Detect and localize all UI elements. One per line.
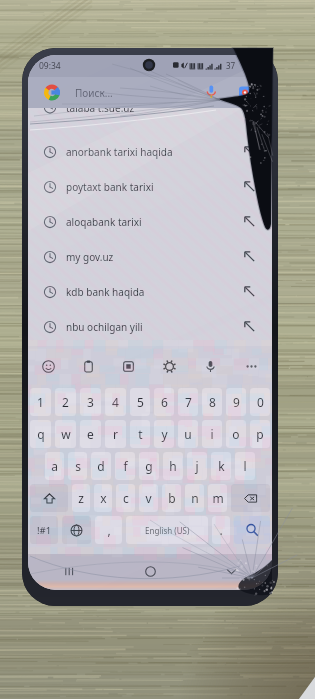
- staticText: 2: [62, 394, 69, 410]
- staticText: f: [123, 458, 128, 474]
- button[interactable]: 5: [130, 388, 150, 416]
- staticText: talaba t.sue.uz: [66, 108, 135, 115]
- button[interactable]: c: [116, 484, 135, 512]
- staticText: aloqabank tarixi: [66, 215, 142, 229]
- button[interactable]: t: [130, 420, 150, 448]
- button[interactable]: my gov.uz: [28, 239, 272, 274]
- button[interactable]: .: [212, 516, 230, 544]
- button[interactable]: v: [139, 484, 158, 512]
- button[interactable]: o: [226, 420, 246, 448]
- staticText: i: [210, 426, 214, 442]
- button[interactable]: Recents: [28, 554, 110, 588]
- staticText: 4: [112, 394, 119, 410]
- button[interactable]: u: [178, 420, 198, 448]
- button[interactable]: More options: [231, 346, 272, 386]
- staticText: w: [61, 426, 71, 442]
- button[interactable]: r: [105, 420, 126, 448]
- staticText: p: [256, 426, 264, 442]
- button[interactable]: n: [185, 484, 204, 512]
- staticText: c: [123, 490, 129, 506]
- staticText: m: [212, 490, 224, 506]
- button[interactable]: poytaxt bank tarixi: [28, 169, 272, 204]
- button[interactable]: Keyboard settings: [149, 346, 190, 386]
- button[interactable]: y: [154, 420, 174, 448]
- button[interactable]: anorbank tarixi haqida: [28, 134, 272, 169]
- staticText: s: [75, 458, 81, 474]
- button[interactable]: 7: [178, 388, 198, 416]
- staticText: j: [195, 458, 199, 474]
- button[interactable]: p: [250, 420, 270, 448]
- staticText: e: [87, 426, 94, 442]
- button[interactable]: 0: [250, 388, 270, 416]
- button[interactable]: 6: [154, 388, 174, 416]
- button[interactable]: Change language: [62, 516, 91, 544]
- staticText: Поиск...: [75, 86, 113, 100]
- staticText: 9: [233, 394, 240, 410]
- staticText: v: [145, 490, 152, 506]
- staticText: 1: [37, 394, 44, 410]
- button[interactable]: kdb bank haqida: [28, 274, 272, 309]
- button[interactable]: aloqabank tarixi: [28, 204, 272, 239]
- button[interactable]: l: [235, 452, 255, 480]
- button[interactable]: h: [163, 452, 183, 480]
- button[interactable]: b: [162, 484, 181, 512]
- staticText: kdb bank haqida: [66, 285, 145, 299]
- button[interactable]: 9: [226, 388, 246, 416]
- button[interactable]: Shift: [30, 484, 68, 512]
- staticText: !#1: [37, 524, 52, 537]
- button[interactable]: Поиск...: [28, 77, 272, 108]
- button[interactable]: Stickers: [108, 346, 149, 386]
- button[interactable]: 3: [80, 388, 101, 416]
- button[interactable]: Back: [191, 554, 272, 588]
- staticText: 5: [137, 394, 144, 410]
- staticText: ,: [107, 522, 111, 538]
- staticText: a: [51, 458, 58, 474]
- button[interactable]: Emoji: [28, 346, 68, 386]
- button[interactable]: Search: [234, 516, 270, 544]
- button[interactable]: nbu ochilgan yili: [28, 309, 272, 344]
- staticText: nbu ochilgan yili: [66, 320, 143, 334]
- button[interactable]: ,: [95, 516, 122, 544]
- staticText: n: [191, 490, 199, 506]
- button[interactable]: i: [202, 420, 222, 448]
- staticText: o: [232, 426, 240, 442]
- button[interactable]: 1: [30, 388, 51, 416]
- button[interactable]: Home: [110, 554, 191, 588]
- staticText: 3: [87, 394, 94, 410]
- button[interactable]: e: [80, 420, 101, 448]
- button[interactable]: 8: [202, 388, 222, 416]
- staticText: x: [100, 490, 107, 506]
- button[interactable]: x: [94, 484, 112, 512]
- button[interactable]: q: [30, 420, 51, 448]
- button[interactable]: g: [139, 452, 159, 480]
- button[interactable]: k: [211, 452, 231, 480]
- button[interactable]: Clipboard: [68, 346, 108, 386]
- staticText: h: [169, 458, 177, 474]
- staticText: u: [184, 426, 192, 442]
- staticText: l: [243, 458, 247, 474]
- button[interactable]: !#1: [30, 516, 58, 544]
- button[interactable]: d: [91, 452, 111, 480]
- button[interactable]: w: [55, 420, 76, 448]
- staticText: 09:34: [39, 60, 61, 72]
- staticText: b: [168, 490, 176, 506]
- staticText: k: [218, 458, 225, 474]
- button[interactable]: m: [208, 484, 227, 512]
- button[interactable]: 4: [105, 388, 126, 416]
- staticText: 8: [209, 394, 216, 410]
- staticText: q: [37, 426, 45, 442]
- staticText: 6: [161, 394, 168, 410]
- button[interactable]: j: [187, 452, 207, 480]
- button[interactable]: 2: [55, 388, 76, 416]
- button[interactable]: z: [72, 484, 90, 512]
- staticText: d: [97, 458, 105, 474]
- button[interactable]: Backspace: [231, 484, 270, 512]
- staticText: t: [138, 426, 143, 442]
- button[interactable]: English (US): [126, 516, 208, 544]
- button[interactable]: Voice input: [190, 346, 231, 386]
- staticText: y: [161, 426, 168, 442]
- button[interactable]: s: [68, 452, 87, 480]
- button[interactable]: f: [115, 452, 135, 480]
- button[interactable]: talaba t.sue.uz: [28, 108, 272, 123]
- button[interactable]: a: [45, 452, 64, 480]
